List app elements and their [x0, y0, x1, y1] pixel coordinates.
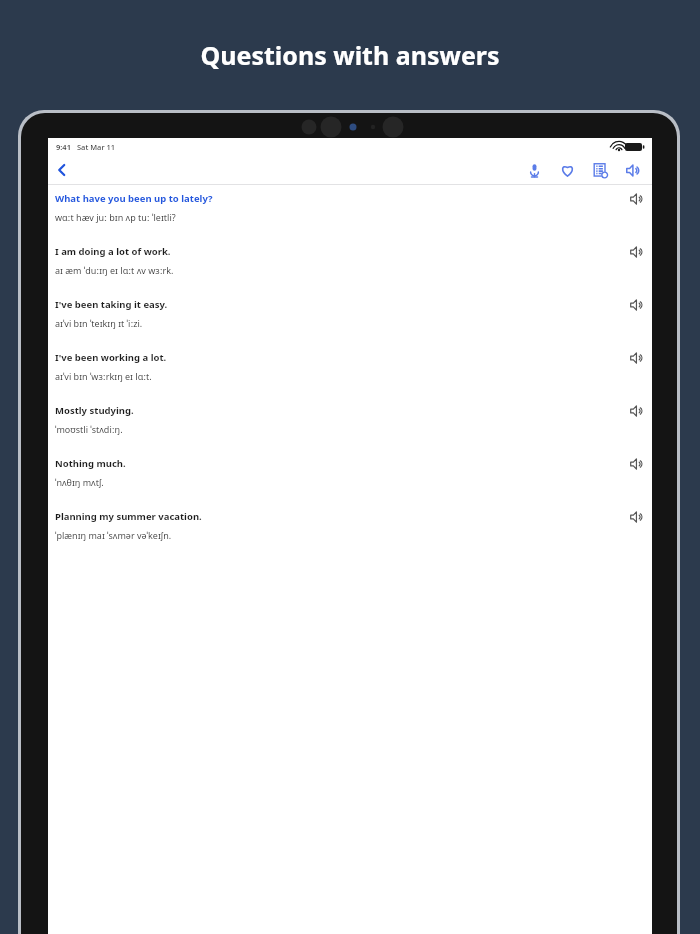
staticText: 9:41	[56, 142, 71, 152]
staticText: aɪˈvi bɪn ˈteɪkɪŋ ɪt ˈiːzi.	[55, 317, 143, 329]
button[interactable]: Play audio	[627, 298, 647, 318]
staticText: ˈnʌθɪŋ mʌtʃ.	[55, 476, 104, 488]
button[interactable]: Play audio	[627, 404, 647, 424]
button[interactable]: Play audio	[627, 351, 647, 371]
staticText: Sat Mar 11	[77, 142, 116, 152]
button[interactable]: I am doing a lot of work.	[48, 242, 652, 279]
button[interactable]: Nothing much.	[48, 454, 652, 491]
staticText: I've been taking it easy.	[55, 298, 168, 311]
button[interactable]: Back	[51, 159, 73, 181]
button[interactable]: Favorite	[556, 159, 578, 181]
staticText: Mostly studying.	[55, 404, 134, 417]
staticText: ˈplænɪŋ maɪ ˈsʌmər vəˈkeɪʃn.	[55, 529, 172, 541]
button[interactable]: Play audio	[627, 192, 647, 212]
button[interactable]: What have you been up to lately?	[48, 189, 652, 226]
button[interactable]: Planning my summer vacation.	[48, 507, 652, 544]
staticText: What have you been up to lately?	[55, 192, 213, 205]
button[interactable]: I've been working a lot.	[48, 348, 652, 385]
button[interactable]: Play all	[622, 159, 644, 181]
button[interactable]: Play audio	[627, 457, 647, 477]
button[interactable]: Microphone	[523, 159, 545, 181]
staticText: wɑːt hæv juː bɪn ʌp tuː ˈleɪtli?	[55, 211, 176, 223]
button[interactable]: I've been taking it easy.	[48, 295, 652, 332]
staticText: aɪ æm ˈduːɪŋ eɪ lɑːt ʌv wɜːrk.	[55, 264, 174, 276]
button[interactable]: Mostly studying.	[48, 401, 652, 438]
staticText: Nothing much.	[55, 457, 126, 470]
button[interactable]: Play audio	[627, 510, 647, 530]
staticText: I am doing a lot of work.	[55, 245, 171, 258]
staticText: I've been working a lot.	[55, 351, 167, 364]
button[interactable]: Transcript	[589, 159, 611, 181]
staticText: ˈmoʊstli ˈstʌdiːŋ.	[55, 423, 123, 435]
staticText: Planning my summer vacation.	[55, 510, 202, 523]
staticText: Questions with answers	[200, 38, 500, 72]
staticText: aɪˈvi bɪn ˈwɜːrkɪŋ eɪ lɑːt.	[55, 370, 152, 382]
button[interactable]: Play audio	[627, 245, 647, 265]
